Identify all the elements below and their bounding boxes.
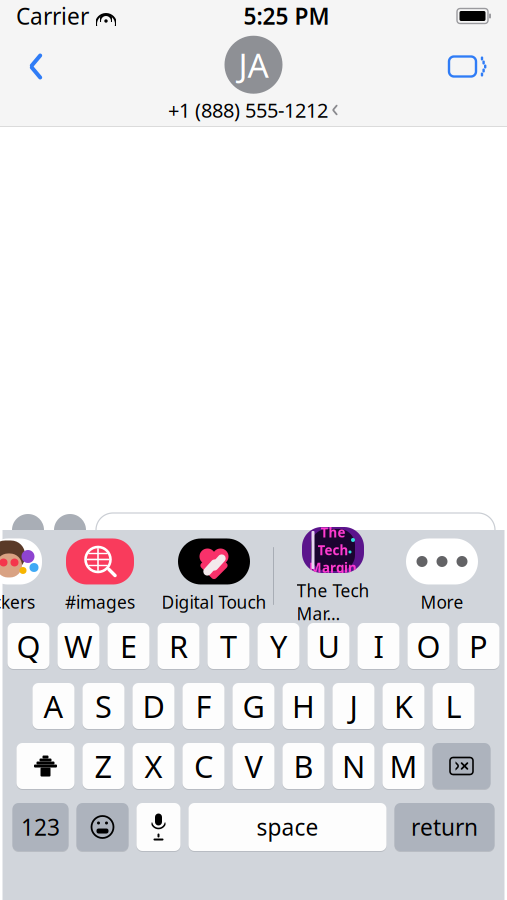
staticText: R [169,626,188,666]
staticText: I [373,626,383,666]
button[interactable]: V [232,742,274,790]
button[interactable]: FaceTime video call [443,44,493,88]
staticText: Z [94,746,112,786]
button[interactable]: P [457,622,499,670]
button[interactable]: Q [7,622,49,670]
button[interactable]: Z [82,742,124,790]
staticText: Q [16,626,40,666]
button[interactable]: Digital Touch [155,535,273,617]
button[interactable]: ckers [0,535,45,617]
button[interactable]: G [232,682,274,730]
staticText: JA [238,43,268,87]
button[interactable]: Emoji [76,802,128,852]
staticText: P [469,626,488,666]
button[interactable]: M [382,742,424,790]
staticText: Y [270,626,287,666]
button[interactable]: O [407,622,449,670]
button[interactable]: X [132,742,174,790]
staticText: A [43,686,63,726]
staticText: D [142,686,164,726]
button[interactable]: B [282,742,324,790]
button[interactable]: E [107,622,149,670]
button[interactable]: Back [14,44,58,88]
staticText: More [420,590,463,613]
staticText: N [342,746,365,786]
button[interactable]: F [182,682,224,730]
button[interactable]: L [432,682,474,730]
button[interactable]: T [207,622,249,670]
button[interactable]: U [307,622,349,670]
staticText: #images [65,590,135,613]
staticText: 123 [21,812,60,842]
button[interactable]: #images [45,535,155,617]
staticText: +1 (888) 555-1212 [168,97,328,123]
staticText: The Tech Mar… [296,579,369,625]
button[interactable]: space [188,802,386,852]
staticText: U [317,626,339,666]
staticText: L [445,686,461,726]
staticText: J [349,686,357,726]
button[interactable]: Shift [16,742,74,790]
staticText: return [411,812,478,842]
button[interactable]: return [394,802,494,852]
staticText: ckers [0,590,35,613]
button[interactable]: More [392,535,492,617]
button[interactable]: JA [168,36,339,123]
staticText: V [244,746,262,786]
staticText: X [144,746,162,786]
button[interactable]: 123 [12,802,68,852]
button[interactable]: W [57,622,99,670]
staticText: H [292,686,315,726]
staticText: E [120,626,137,666]
button[interactable]: A [32,682,74,730]
staticText: T [220,626,237,666]
button[interactable]: N [332,742,374,790]
button[interactable]: K [382,682,424,730]
staticText: W [64,626,93,666]
staticText: Carrier [16,1,89,31]
button[interactable]: J [332,682,374,730]
staticText: space [256,812,318,842]
staticText: Tech [317,541,348,559]
staticText: S [95,686,112,726]
staticText: 5:25 PM [243,1,329,31]
staticText: O [416,626,440,666]
button[interactable]: The [274,535,392,617]
staticText: Margin [309,559,357,576]
staticText: Digital Touch [161,590,266,613]
button[interactable]: Dictation [136,802,180,852]
staticText: C [194,746,213,786]
button[interactable]: R [157,622,199,670]
button[interactable]: D [132,682,174,730]
button[interactable]: Y [257,622,299,670]
staticText: F [195,686,211,726]
staticText: The [320,523,345,541]
button[interactable]: I [357,622,399,670]
button[interactable]: H [282,682,324,730]
button[interactable]: S [82,682,124,730]
button[interactable]: C [182,742,224,790]
staticText: G [242,686,264,726]
button[interactable]: Delete [432,742,490,790]
staticText: B [293,746,313,786]
staticText: K [394,686,413,726]
staticText: M [389,746,417,786]
